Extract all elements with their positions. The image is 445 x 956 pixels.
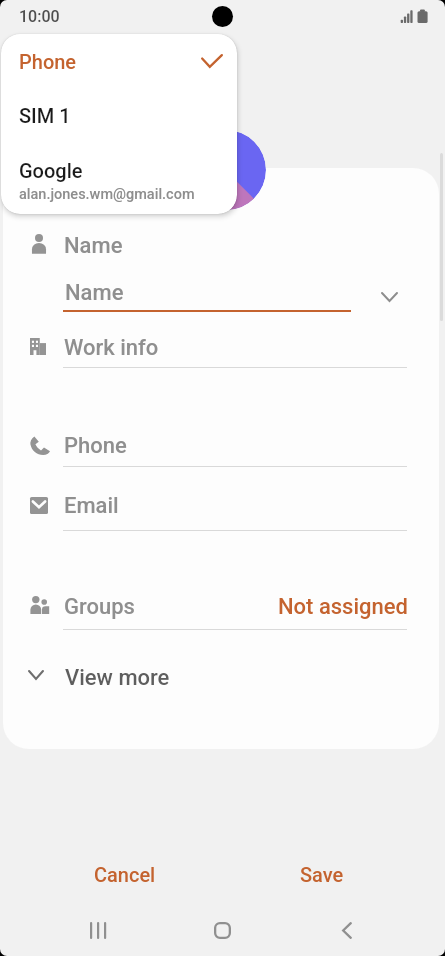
button[interactable]	[18, 485, 410, 529]
button[interactable]	[1, 38, 237, 84]
button[interactable]: Save	[259, 853, 384, 893]
staticText: 10:00	[19, 7, 60, 26]
staticText: Groups	[64, 594, 135, 620]
staticText: Name	[65, 280, 124, 306]
staticText: Cancel	[94, 863, 156, 886]
button[interactable]	[1, 92, 237, 140]
staticText: View more	[65, 665, 170, 691]
button[interactable]	[18, 327, 410, 371]
staticText: Phone	[64, 433, 127, 459]
button[interactable]: Expand name fields	[368, 275, 408, 315]
button[interactable]	[18, 660, 228, 698]
staticText: Work info	[64, 335, 159, 361]
button[interactable]	[18, 586, 410, 630]
staticText: Name	[64, 233, 123, 259]
staticText: SIM 1	[19, 104, 71, 127]
staticText: alan.jones.wm@gmail.com	[19, 186, 195, 203]
staticText: Save	[300, 863, 344, 886]
button[interactable]: Home	[182, 908, 262, 953]
button[interactable]: Recent apps	[58, 908, 138, 953]
button[interactable]	[1, 146, 237, 214]
button[interactable]: Cancel	[62, 853, 187, 893]
staticText: Phone	[19, 50, 77, 73]
button[interactable]: Back	[307, 908, 387, 953]
staticText: Not assigned	[278, 594, 408, 620]
staticText: Google	[19, 159, 83, 182]
button[interactable]	[18, 425, 410, 469]
staticText: Email	[64, 493, 119, 519]
button[interactable]: Contact photo	[186, 130, 266, 210]
button[interactable]	[18, 228, 218, 266]
